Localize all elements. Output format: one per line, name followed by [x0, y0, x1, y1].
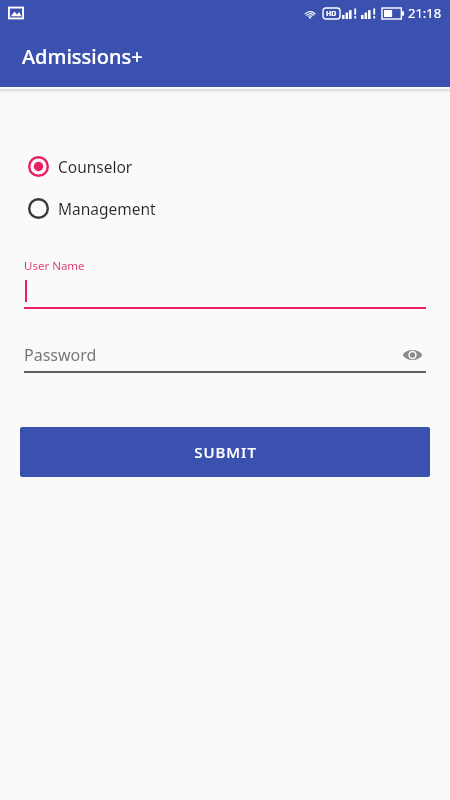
button[interactable]: User Name	[24, 258, 426, 309]
staticText: Management	[58, 198, 156, 219]
button[interactable]: Password	[24, 339, 426, 373]
staticText: SUBMIT	[194, 442, 257, 462]
staticText: Admissions+	[22, 43, 143, 70]
staticText: HD	[326, 9, 337, 19]
staticText: User Name	[24, 258, 85, 274]
button[interactable]: Management	[0, 191, 450, 225]
button[interactable]: SUBMIT	[20, 427, 430, 477]
staticText: Counselor	[58, 156, 133, 177]
staticText: Password	[24, 344, 97, 366]
button[interactable]: Show password	[398, 341, 426, 369]
button[interactable]: Counselor	[0, 149, 450, 183]
staticText: 21:18	[408, 4, 442, 22]
